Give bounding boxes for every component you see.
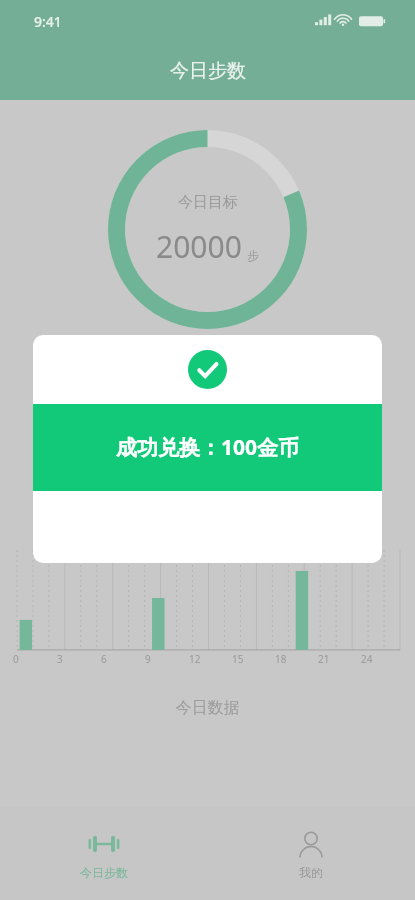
staticText: 今日目标 <box>178 193 238 212</box>
button[interactable]: 我的 <box>207 807 415 900</box>
staticText: 0 <box>13 652 19 666</box>
staticText: 3 <box>57 652 63 666</box>
staticText: 今日步数 <box>170 59 246 83</box>
staticText: 我的 <box>299 865 323 880</box>
staticText: 9 <box>145 652 151 666</box>
staticText: 步 <box>247 248 259 263</box>
staticText: 6 <box>101 652 107 666</box>
staticText: 15 <box>232 652 244 666</box>
staticText: 2265 <box>265 840 348 889</box>
button[interactable]: 今日步数 <box>0 807 207 900</box>
staticText: 21 <box>318 652 330 666</box>
staticText: 12 <box>189 652 201 666</box>
staticText: 今日步数 <box>80 865 128 880</box>
staticText: 20000 <box>156 226 242 267</box>
staticText: 9:41 <box>34 12 62 31</box>
staticText: 成功兑换：100金币 <box>116 433 300 462</box>
staticText: 今日数据 <box>0 698 415 718</box>
staticText: 24 <box>361 652 373 666</box>
staticText: 18 <box>275 652 287 666</box>
